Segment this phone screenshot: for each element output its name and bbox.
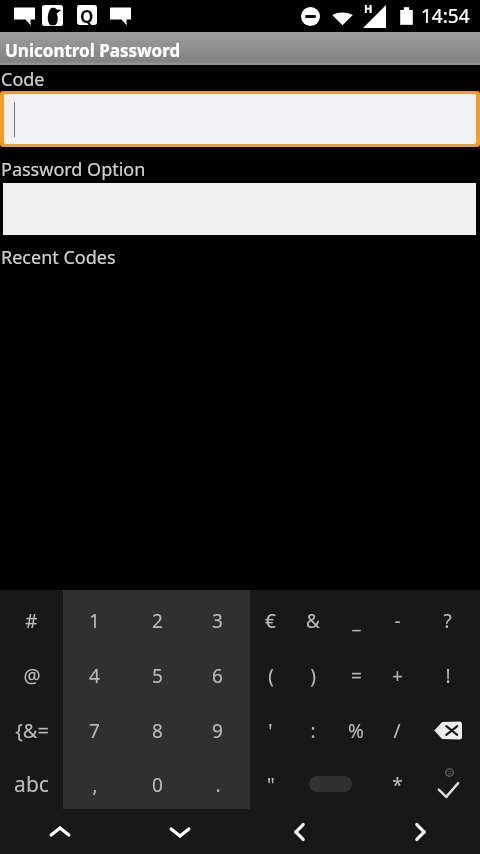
button[interactable]: Space — [291, 757, 334, 812]
staticText: 9 — [212, 718, 223, 744]
button[interactable]: / — [376, 703, 422, 758]
staticText: abc — [14, 770, 49, 799]
staticText: {&= — [15, 717, 49, 744]
button[interactable]: ? — [422, 593, 480, 648]
button[interactable] — [4, 94, 476, 144]
staticText: : — [310, 718, 316, 744]
staticText: " — [267, 772, 275, 798]
button[interactable]: 1 — [63, 593, 126, 648]
button[interactable]: , — [63, 757, 126, 812]
button[interactable]: & — [291, 593, 334, 648]
staticText: & — [306, 608, 320, 634]
button[interactable]: % — [334, 703, 376, 758]
staticText: ? — [443, 608, 452, 634]
staticText: * — [392, 772, 403, 798]
staticText: @ — [23, 663, 41, 689]
button[interactable]: Scroll down — [120, 809, 240, 854]
button[interactable]: 2 — [126, 593, 188, 648]
staticText: Password Option — [1, 157, 146, 182]
staticText: ( — [268, 663, 274, 689]
button[interactable]: Next — [360, 809, 480, 854]
staticText: , — [92, 772, 98, 798]
staticText: € — [265, 608, 276, 634]
staticText: H — [364, 1, 373, 16]
staticText: . — [215, 772, 221, 798]
button[interactable]: 4 — [63, 648, 126, 703]
button[interactable]: * — [376, 757, 422, 812]
staticText: 4 — [89, 663, 100, 689]
button[interactable]: " — [244, 757, 291, 812]
button[interactable]: ' — [244, 703, 291, 758]
button[interactable]: € — [244, 593, 291, 648]
button[interactable]: 3 — [187, 593, 244, 648]
button[interactable]: abc — [0, 757, 63, 812]
staticText: 5 — [152, 663, 163, 689]
other: Enter — [438, 782, 459, 798]
button[interactable]: ) — [291, 648, 334, 703]
staticText: Unicontrol Password — [5, 39, 181, 62]
staticText: _ — [352, 608, 361, 634]
button[interactable]: - — [376, 593, 422, 648]
button[interactable]: 9 — [187, 703, 244, 758]
staticText: Recent Codes — [1, 245, 116, 270]
button[interactable]: Previous — [240, 809, 360, 854]
button[interactable]: + — [376, 648, 422, 703]
staticText: 3 — [212, 608, 223, 634]
staticText: ! — [445, 663, 451, 689]
staticText: Q — [80, 5, 94, 25]
staticText: 7 — [89, 718, 100, 744]
staticText: % — [348, 718, 364, 744]
other: Space — [309, 776, 352, 792]
button[interactable]: ! — [422, 648, 480, 703]
button[interactable]: . — [187, 757, 244, 812]
button[interactable]: 0 — [126, 757, 188, 812]
button[interactable]: Backspace — [422, 703, 480, 758]
staticText: ' — [268, 718, 273, 744]
staticText: 1 — [89, 608, 100, 634]
other: Backspace — [434, 721, 462, 740]
staticText: + — [392, 663, 403, 689]
staticText: 8 — [152, 718, 163, 744]
button[interactable] — [334, 757, 376, 812]
button[interactable]: _ — [334, 593, 376, 648]
button[interactable]: ( — [244, 648, 291, 703]
button[interactable]: # — [0, 593, 63, 648]
button[interactable]: : — [291, 703, 334, 758]
button[interactable]: 5 — [126, 648, 188, 703]
button[interactable]: 6 — [187, 648, 244, 703]
button[interactable]: Scroll up — [0, 809, 120, 854]
staticText: 2 — [152, 608, 163, 634]
button[interactable]: 7 — [63, 703, 126, 758]
staticText: Code — [1, 67, 45, 92]
button[interactable]: = — [334, 648, 376, 703]
button[interactable]: Emoji — [422, 757, 480, 812]
button[interactable]: {&= — [0, 703, 63, 758]
staticText: 14:54 — [421, 3, 470, 29]
button[interactable]: 8 — [126, 703, 188, 758]
staticText: ) — [310, 663, 316, 689]
staticText: 6 — [212, 663, 223, 689]
staticText: / — [393, 718, 401, 744]
staticText: # — [25, 608, 38, 634]
staticText: 0 — [152, 772, 163, 798]
staticText: - — [394, 608, 401, 634]
other: Emoji — [445, 768, 454, 777]
staticText: = — [351, 663, 362, 689]
button[interactable]: @ — [0, 648, 63, 703]
